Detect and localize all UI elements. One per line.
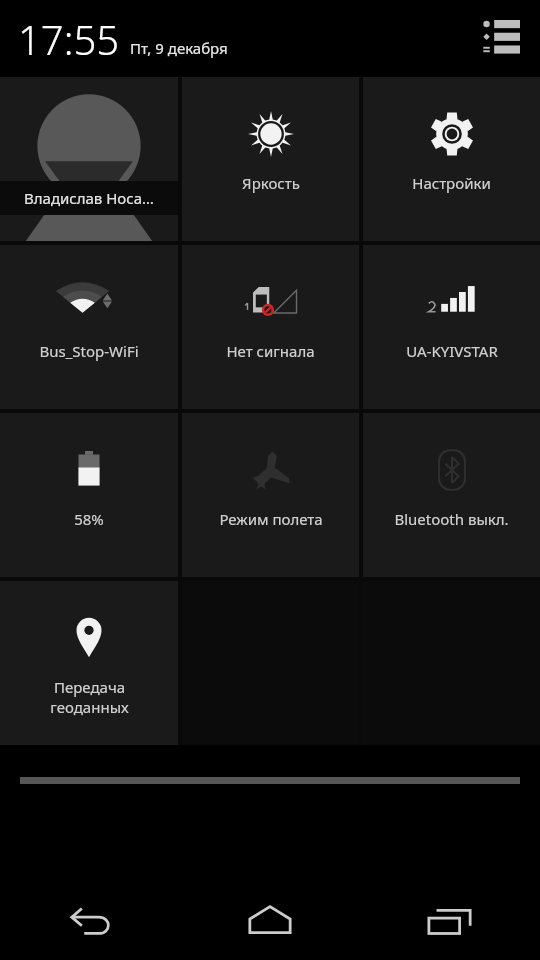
button[interactable]: Режим полета: [182, 413, 359, 577]
button[interactable]: 58%: [0, 413, 178, 577]
button[interactable]: Передача геоданных: [0, 581, 178, 745]
button[interactable]: Нет сигнала: [182, 245, 359, 409]
button[interactable]: UA-KYIVSTAR: [363, 245, 540, 409]
staticText: Яркость: [242, 173, 300, 193]
button[interactable]: Home: [180, 882, 360, 960]
staticText: UA-KYIVSTAR: [406, 341, 498, 361]
staticText: Передача геоданных: [50, 677, 129, 717]
staticText: Bus_Stop-WiFi: [39, 341, 139, 361]
button[interactable]: Back: [0, 882, 180, 960]
staticText: Режим полета: [219, 509, 323, 529]
button[interactable]: Bluetooth выкл.: [363, 413, 540, 577]
button[interactable]: Владислав Носа…: [0, 77, 178, 241]
staticText: 58%: [74, 509, 104, 529]
button[interactable]: Яркость: [182, 77, 359, 241]
button[interactable]: Настройки: [363, 77, 540, 241]
staticText: Пт, 9 декабря: [130, 38, 228, 58]
staticText: Нет сигнала: [226, 341, 315, 361]
staticText: Владислав Носа…: [24, 188, 154, 208]
staticText: Bluetooth выкл.: [394, 509, 509, 529]
button[interactable]: Notification list: [474, 12, 528, 66]
staticText: Настройки: [412, 173, 491, 193]
button[interactable]: Bus_Stop-WiFi: [0, 245, 178, 409]
staticText: 17:55: [18, 12, 120, 66]
button[interactable]: Recent apps: [360, 882, 540, 960]
